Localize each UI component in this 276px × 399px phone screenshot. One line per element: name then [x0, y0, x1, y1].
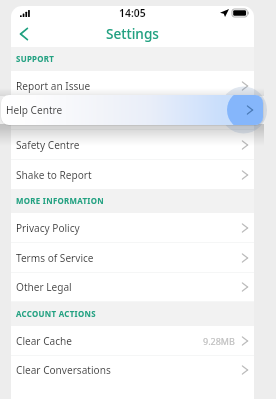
- staticText: Privacy Policy: [16, 221, 80, 235]
- button[interactable]: Report an Issue: [11, 71, 254, 101]
- button[interactable]: Terms of Service: [11, 243, 254, 273]
- staticText: Clear Cache: [16, 334, 72, 348]
- staticText: 14:05: [119, 6, 146, 20]
- staticText: Shake to Report: [16, 168, 92, 182]
- staticText: 9.28MB: [203, 335, 235, 347]
- staticText: Clear Conversations: [16, 363, 111, 377]
- staticText: MORE INFORMATION: [16, 196, 104, 207]
- staticText: Settings: [106, 24, 159, 43]
- button[interactable]: Other Legal: [11, 272, 254, 302]
- button[interactable]: Help Centre: [11, 100, 254, 130]
- button[interactable]: Back: [12, 22, 36, 46]
- staticText: SUPPORT: [16, 54, 55, 65]
- staticText: Terms of Service: [16, 251, 94, 265]
- button[interactable]: Shake to Report: [11, 160, 254, 190]
- button[interactable]: Privacy Policy: [11, 213, 254, 243]
- button[interactable]: Clear Cache: [11, 326, 254, 356]
- staticText: Report an Issue: [16, 79, 91, 93]
- button[interactable]: Help Centre: [1, 95, 263, 125]
- staticText: Help Centre: [16, 108, 73, 122]
- staticText: Other Legal: [16, 280, 72, 294]
- staticText: Help Centre: [6, 103, 63, 117]
- button[interactable]: Safety Centre: [11, 130, 254, 160]
- staticText: Safety Centre: [16, 138, 80, 152]
- staticText: ACCOUNT ACTIONS: [16, 309, 96, 320]
- button[interactable]: Clear Conversations: [11, 355, 254, 385]
